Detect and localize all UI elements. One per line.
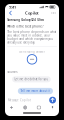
staticText: Samsung Galaxy S24 Ultra <box>7 18 44 22</box>
staticText: Tell me more about it <box>20 89 50 93</box>
button[interactable]: Image <box>36 105 41 110</box>
staticText: Generating answer <box>19 50 45 53</box>
button[interactable]: Send <box>49 97 56 103</box>
staticText: 9:41 <box>9 4 16 10</box>
button[interactable]: Back <box>6 10 14 16</box>
staticText: Sources <box>7 70 17 74</box>
button[interactable]: More options <box>49 10 57 16</box>
button[interactable]: Web search <box>23 105 28 110</box>
staticText: The best phone depends on what you value… <box>7 30 56 44</box>
button[interactable]: Add <box>9 105 14 110</box>
staticText: Message Copilot <box>8 98 31 102</box>
staticText: Which is the best phone? <box>7 25 43 28</box>
staticText: Let me check that for you <box>14 77 48 81</box>
button[interactable]: Voice <box>50 105 55 110</box>
staticText: Copilot <box>25 10 39 16</box>
